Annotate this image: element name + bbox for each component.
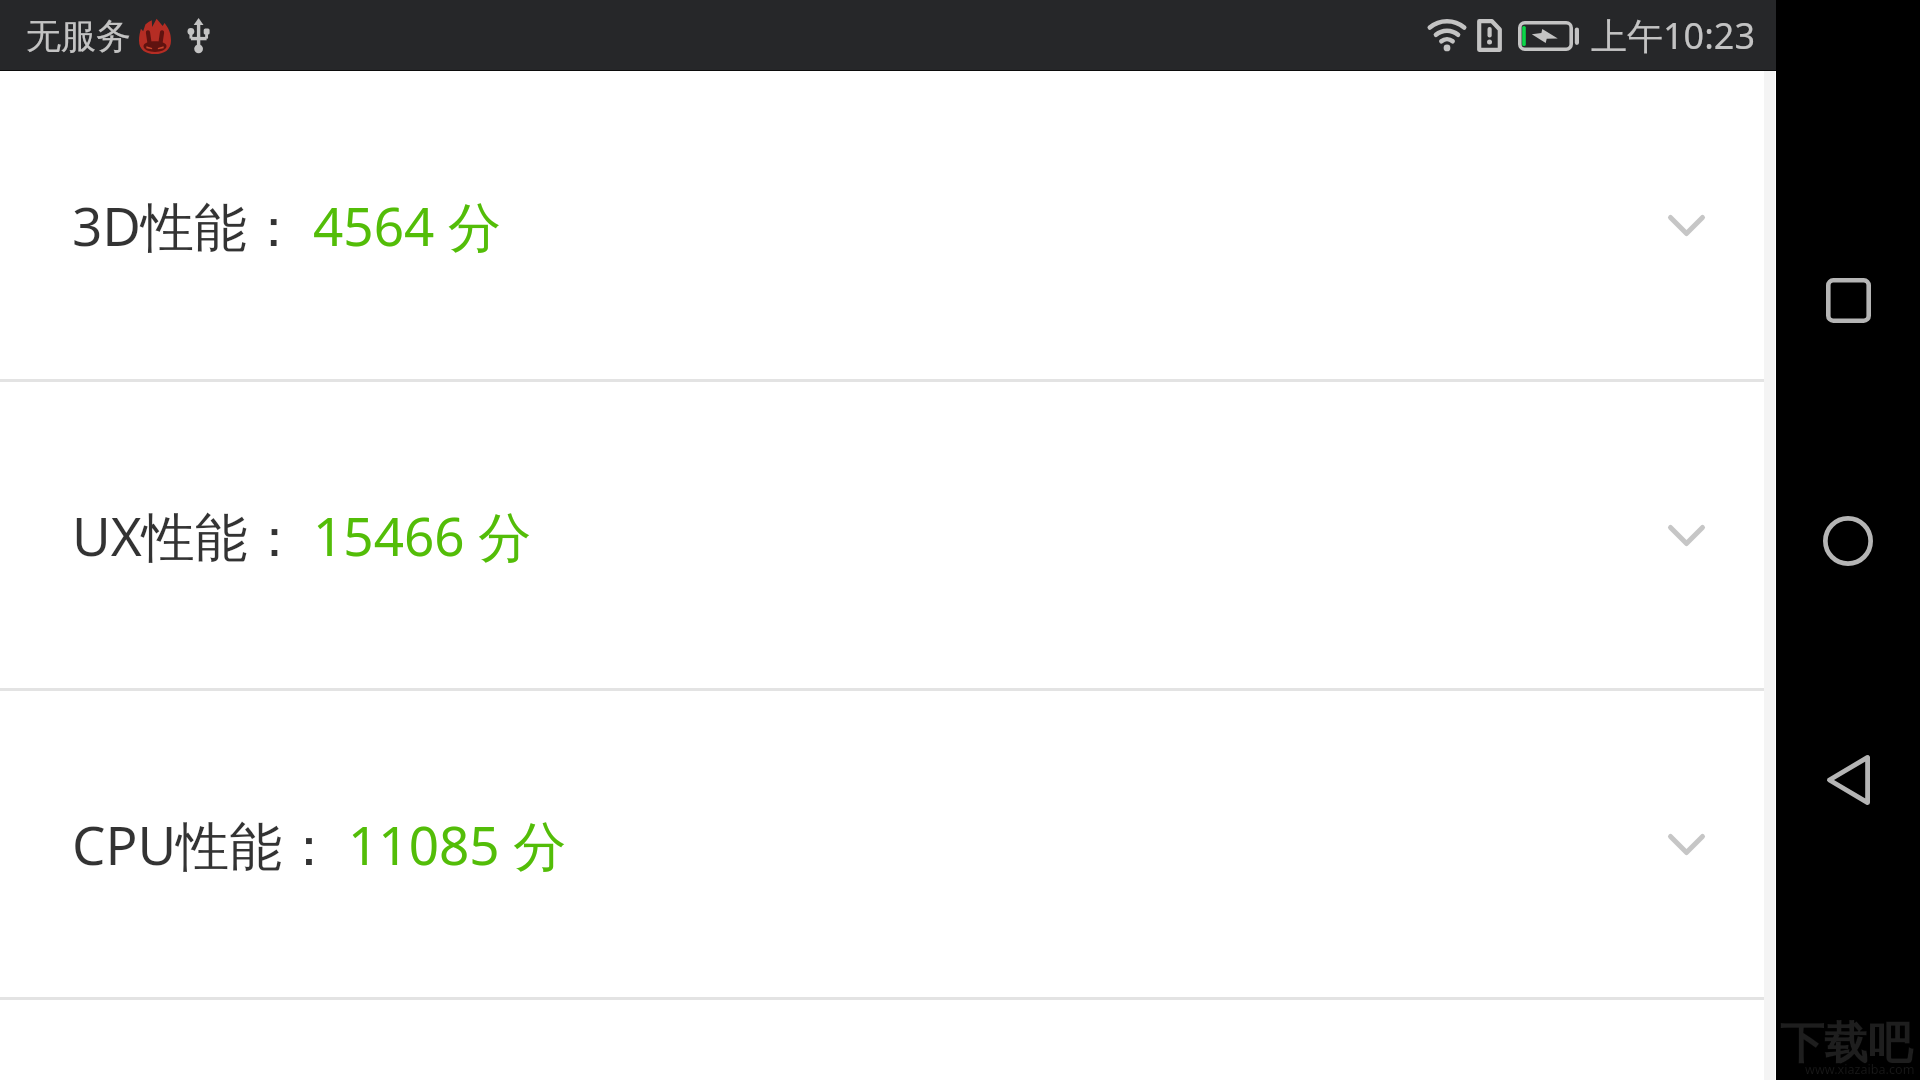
staticText: 下载吧 [1780,1016,1912,1071]
button[interactable]: Home [1802,495,1894,587]
staticText: www.xiazaiba.com [1805,1061,1915,1078]
staticText: 11085 分 [348,808,567,880]
button[interactable]: CPU性能： [0,691,1776,997]
button[interactable]: 3D性能： [0,71,1776,379]
button[interactable]: UX性能： [0,382,1776,688]
staticText: 上午10:23 [1591,11,1756,60]
button[interactable]: Expand CPU性能： details [1646,804,1726,884]
button[interactable]: Expand UX性能： details [1646,495,1726,575]
staticText: UX性能： [72,499,301,571]
button[interactable]: Expand 3D性能： details [1646,185,1726,265]
button[interactable]: Recent apps [1802,254,1894,346]
button[interactable]: Back [1802,734,1894,826]
staticText: 4564 分 [313,189,502,261]
staticText: 3D性能： [72,189,301,261]
staticText: CPU性能： [72,808,336,880]
staticText: 无服务 [26,14,131,58]
staticText: 15466 分 [313,499,532,571]
